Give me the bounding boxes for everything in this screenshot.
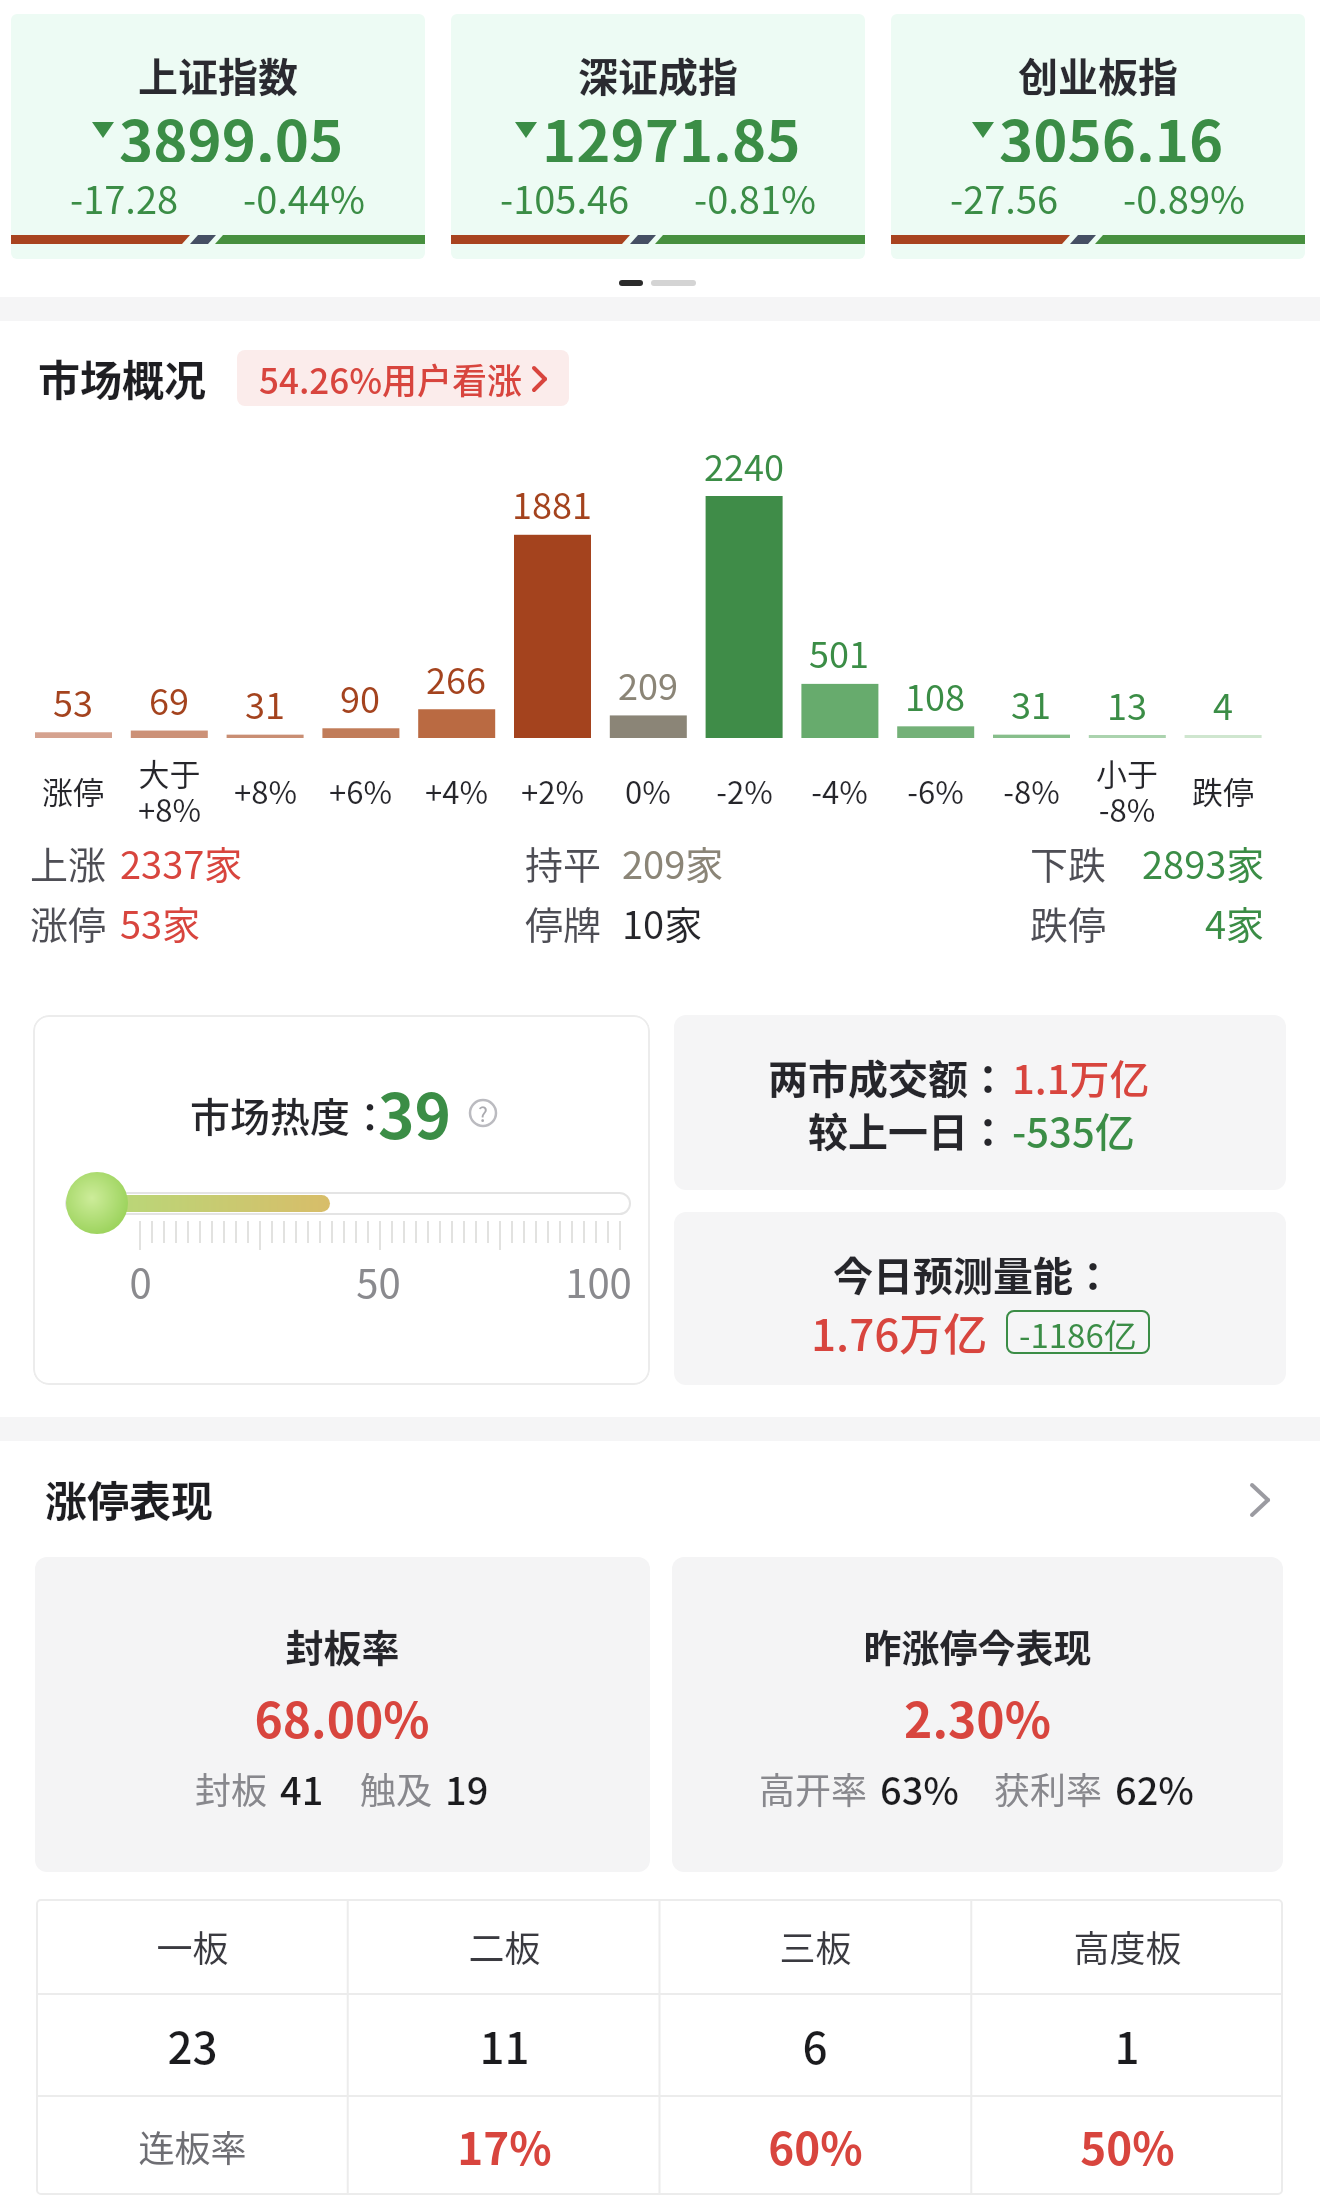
staticText: -17.28 — [70, 170, 179, 214]
staticText: 两市成交额： — [768, 1048, 1008, 1106]
staticText: 0% — [625, 768, 671, 813]
staticText: 3899.05 — [119, 96, 344, 162]
button[interactable]: 上证指数 — [11, 14, 425, 259]
staticText: 2893家 — [1142, 835, 1265, 890]
staticText: 6 — [802, 2013, 828, 2077]
staticText: 深证成指 — [578, 46, 738, 104]
staticText: +8% — [234, 768, 297, 813]
staticText: 1.1万亿 — [1012, 1048, 1150, 1106]
staticText: ? — [478, 1099, 488, 1128]
staticText: 50% — [1080, 2114, 1175, 2178]
staticText: 3056.16 — [999, 96, 1224, 162]
staticText: -0.89% — [1123, 170, 1246, 214]
staticText: 封板率 — [285, 1618, 400, 1673]
staticText: 获利率 — [994, 1762, 1103, 1814]
staticText: 266 — [426, 652, 486, 704]
staticText: 封板 — [195, 1762, 268, 1814]
staticText: 31 — [1011, 677, 1051, 729]
staticText: 昨涨停今表现 — [863, 1618, 1092, 1673]
staticText: -105.46 — [500, 170, 630, 214]
staticText: 跌停 — [1030, 895, 1107, 950]
staticText: -27.56 — [950, 170, 1059, 214]
staticText: 50 — [356, 1252, 401, 1310]
staticText: 2.30% — [904, 1682, 1051, 1752]
staticText: +4% — [425, 768, 488, 813]
staticText: 100 — [565, 1252, 632, 1310]
staticText: -1186亿 — [1019, 1310, 1137, 1354]
staticText: 二板 — [468, 1920, 541, 1972]
staticText: 62% — [1115, 1761, 1195, 1816]
staticText: 高开率 — [759, 1762, 868, 1814]
staticText: 高度板 — [1073, 1920, 1182, 1972]
staticText: 停牌 — [525, 895, 602, 950]
staticText: 209 — [618, 658, 678, 710]
staticText: -6% — [907, 768, 964, 813]
staticText: 68.00% — [254, 1682, 430, 1752]
staticText: 41 — [280, 1761, 324, 1816]
staticText: 12971.85 — [542, 96, 801, 162]
staticText: 1 — [1114, 2013, 1140, 2077]
staticText: 1.76万亿 — [811, 1300, 988, 1364]
staticText: 大于 +8% — [138, 750, 201, 831]
staticText: +2% — [521, 768, 584, 813]
button[interactable]: 创业板指 — [891, 14, 1305, 259]
staticText: 上证指数 — [138, 46, 298, 104]
staticText: 涨停 — [30, 895, 107, 950]
staticText: 小于 -8% — [1096, 750, 1158, 831]
staticText: 90 — [340, 671, 380, 723]
staticText: 53家 — [120, 895, 201, 950]
staticText: 一板 — [156, 1920, 229, 1972]
staticText: -535亿 — [1012, 1101, 1135, 1159]
staticText: 10家 — [622, 895, 703, 950]
staticText: 19 — [445, 1761, 489, 1816]
staticText: 较上一日： — [808, 1101, 1008, 1159]
staticText: 今日预测量能： — [833, 1245, 1113, 1303]
staticText: 跌停 — [1192, 768, 1254, 813]
staticText: 39 — [378, 1067, 452, 1157]
staticText: -2% — [716, 768, 773, 813]
staticText: 连板率 — [138, 2120, 247, 2172]
staticText: -0.44% — [243, 170, 366, 214]
staticText: 11 — [479, 2013, 530, 2077]
staticText: -8% — [1003, 768, 1060, 813]
staticText: 下跌 — [1030, 835, 1107, 890]
staticText: -4% — [811, 768, 868, 813]
staticText: 持平 — [525, 835, 602, 890]
staticText: 4家 — [1205, 895, 1265, 950]
staticText: 108 — [905, 669, 965, 721]
staticText: +6% — [329, 768, 392, 813]
staticText: 60% — [768, 2114, 863, 2178]
staticText: 三板 — [779, 1920, 852, 1972]
staticText: 触及 — [360, 1762, 433, 1814]
staticText: -0.81% — [694, 170, 817, 214]
staticText: 23 — [167, 2013, 218, 2077]
staticText: 上涨 — [30, 835, 107, 890]
staticText: 209家 — [622, 835, 724, 890]
staticText: 501 — [809, 626, 869, 678]
staticText: 0 — [129, 1252, 152, 1310]
staticText: 创业板指 — [1018, 46, 1178, 104]
staticText: 市场概况 — [38, 347, 207, 408]
staticText: 4 — [1213, 678, 1233, 730]
staticText: 17% — [457, 2114, 552, 2178]
staticText: 54.26%用户看涨 — [259, 353, 523, 404]
staticText: 2240 — [704, 439, 784, 491]
staticText: 1881 — [512, 477, 592, 529]
staticText: 69 — [149, 673, 189, 725]
staticText: 63% — [880, 1761, 960, 1816]
staticText: 2337家 — [120, 835, 243, 890]
staticText: 涨停表现 — [45, 1468, 214, 1529]
staticText: 31 — [245, 677, 285, 729]
staticText: 13 — [1107, 678, 1147, 730]
staticText: 市场热度： — [190, 1086, 390, 1144]
button[interactable] — [0, 1460, 1320, 1540]
button[interactable]: 54.26%用户看涨 — [237, 350, 569, 406]
button[interactable]: 深证成指 — [451, 14, 865, 259]
staticText: 53 — [53, 675, 93, 727]
button[interactable] — [461, 1091, 505, 1135]
staticText: 涨停 — [42, 768, 104, 813]
